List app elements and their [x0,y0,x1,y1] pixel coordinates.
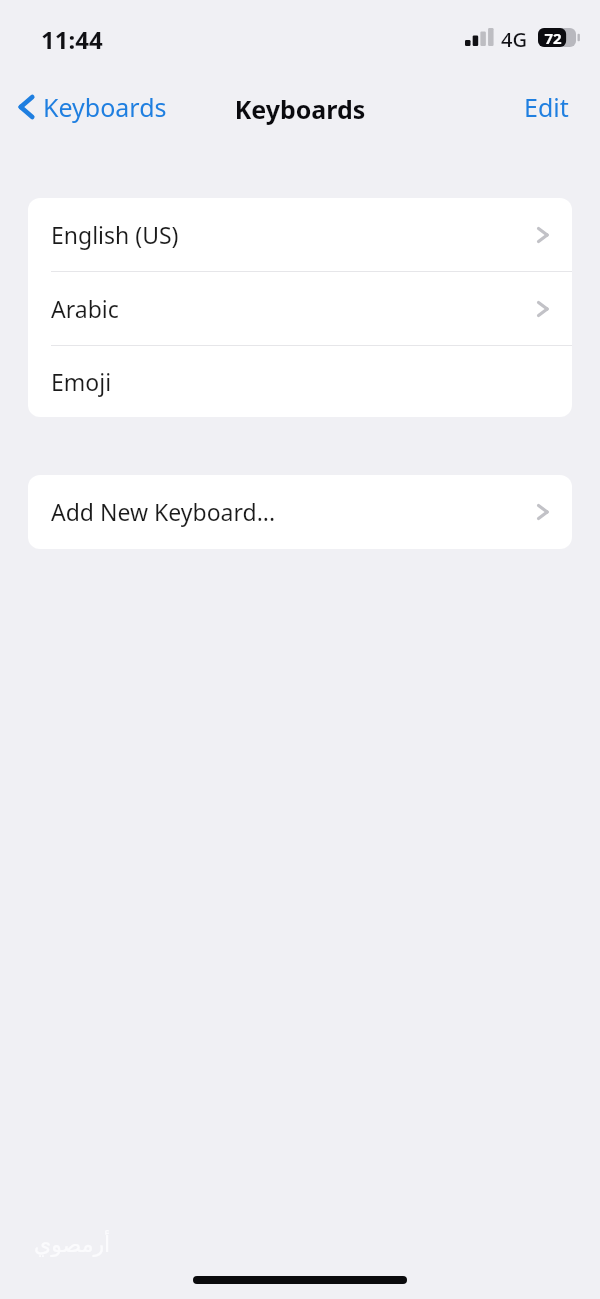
staticText: English (US) [51,219,179,250]
button[interactable]: English (US) [28,198,572,271]
staticText: Keyboards [43,90,167,124]
button[interactable]: Edit [514,86,579,128]
button[interactable]: Keyboards [10,86,175,128]
button[interactable]: Arabic [28,272,572,345]
staticText: أرمصوي [34,1232,111,1258]
staticText: Keyboards [0,92,600,126]
button[interactable]: Add New Keyboard... [28,475,572,548]
staticText: Edit [524,90,569,124]
staticText: Emoji [51,366,112,397]
staticText: 11:44 [41,23,103,56]
staticText: 72 [538,28,568,47]
staticText: Arabic [51,293,119,324]
staticText: Add New Keyboard... [51,496,276,527]
staticText: 4G [501,26,527,53]
button[interactable]: Emoji [28,346,572,417]
